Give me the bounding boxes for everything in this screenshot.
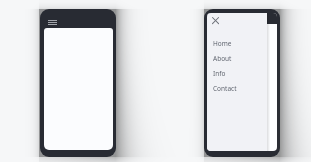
button[interactable]: Home [207,36,267,51]
staticText: About [213,54,232,63]
staticText: Home [213,39,232,48]
button[interactable]: About [207,51,267,66]
button[interactable] [45,17,60,27]
staticText: Info [213,69,226,78]
button[interactable]: Info [207,66,267,81]
button[interactable]: Contact [207,81,267,96]
staticText: Contact [213,84,237,93]
button[interactable] [210,15,222,27]
